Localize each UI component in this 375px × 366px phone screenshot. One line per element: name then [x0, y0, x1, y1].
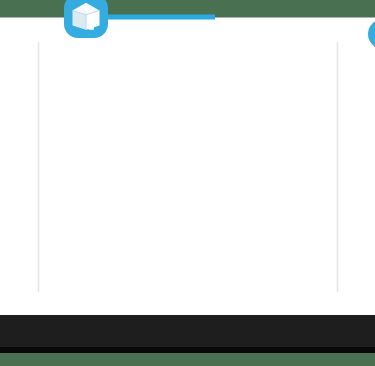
button[interactable]: Package app icon [0, 0, 375, 366]
